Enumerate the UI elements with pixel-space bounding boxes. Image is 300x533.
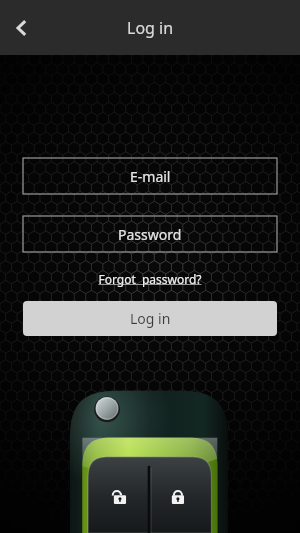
staticText: Log in [130,309,171,328]
button[interactable]: Log in [23,301,277,336]
button[interactable]: E-mail [23,158,277,194]
button[interactable]: Forgot password? [98,271,202,287]
button[interactable]: Back [0,6,44,50]
button[interactable]: Password [23,216,277,252]
staticText: Log in [127,17,174,39]
staticText: E-mail [130,167,171,186]
staticText: Forgot password? [98,271,202,287]
staticText: Password [118,225,182,244]
